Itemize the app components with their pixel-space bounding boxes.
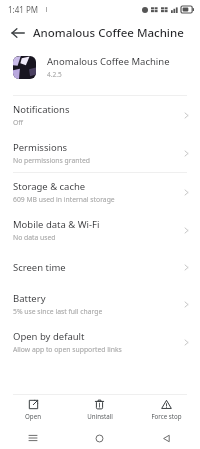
button[interactable]: Storage & cache [0, 173, 200, 211]
button[interactable]: Uninstall [66, 395, 133, 427]
staticText: Permissions [13, 141, 68, 154]
button[interactable]: Battery [0, 285, 200, 323]
staticText: 609 MB used in internal storage [13, 195, 115, 204]
staticText: Off [13, 118, 23, 127]
button[interactable]: Back [133, 427, 200, 449]
button[interactable]: Notifications [0, 96, 200, 134]
button[interactable]: Force stop [133, 395, 200, 427]
staticText: 1:41 PM [8, 4, 39, 15]
button[interactable]: Open by default [0, 323, 200, 361]
staticText: Screen time [13, 261, 66, 274]
button[interactable]: Mobile data & Wi-Fi [0, 211, 200, 249]
button[interactable]: Back [7, 22, 29, 44]
button[interactable]: Home [66, 427, 133, 449]
button[interactable]: Permissions [0, 134, 200, 172]
staticText: Battery [13, 292, 46, 305]
staticText: 4.2.5 [47, 70, 62, 79]
staticText: No data used [13, 233, 56, 242]
staticText: Notifications [13, 103, 70, 116]
staticText: Anomalous Coffee Machine [47, 55, 170, 68]
staticText: Allow app to open supported links [13, 345, 122, 354]
staticText: Anomalous Coffee Machine [33, 25, 184, 41]
button[interactable]: Anomalous Coffee Machine [0, 48, 200, 86]
button[interactable]: Open [0, 395, 66, 427]
staticText: Storage & cache [13, 180, 86, 193]
staticText: Mobile data & Wi-Fi [13, 218, 100, 231]
button[interactable]: Recents [0, 427, 66, 449]
staticText: Force stop [151, 412, 182, 420]
button[interactable]: Screen time [0, 249, 200, 285]
staticText: Uninstall [87, 412, 113, 420]
staticText: Open [25, 412, 41, 420]
staticText: Open by default [13, 330, 85, 343]
staticText: No permissions granted [13, 156, 90, 165]
staticText: 5% use since last full charge [13, 307, 103, 316]
